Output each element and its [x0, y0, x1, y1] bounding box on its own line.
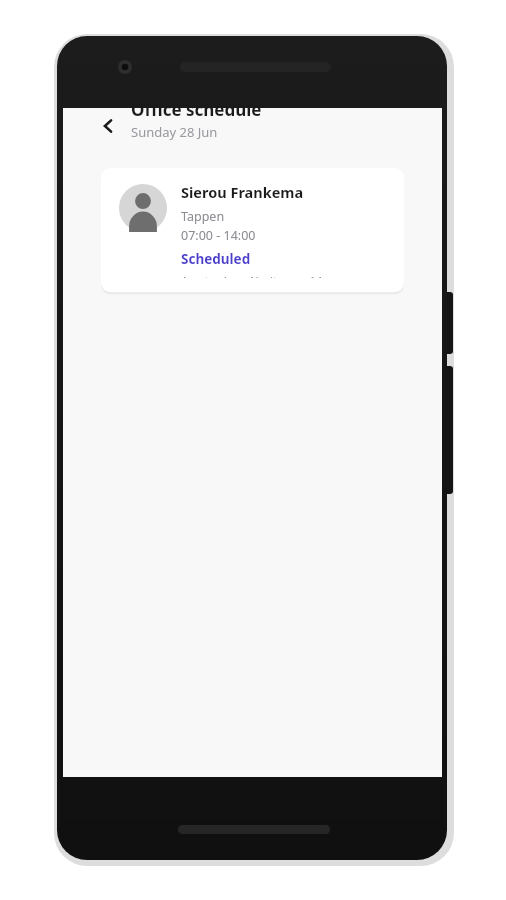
staticText: Sunday 28 Jun — [131, 123, 218, 141]
staticText: Sierou Frankema — [181, 182, 304, 202]
button[interactable]: Sierou Frankema — [101, 168, 404, 292]
staticText: Tappen — [181, 208, 225, 225]
button[interactable]: Back — [90, 108, 126, 144]
staticText: 07:00 - 14:00 — [181, 227, 256, 244]
staticText: Office schedule — [131, 98, 262, 121]
staticText: Scheduled — [181, 250, 251, 268]
staticText: Amsterdam, Naritaweg 14 — [181, 273, 323, 278]
